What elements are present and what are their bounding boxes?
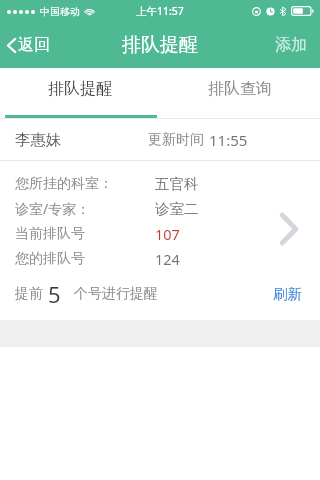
staticText: 您所挂的科室： [15,175,113,193]
staticText: 更新时间 [148,131,204,149]
staticText: 添加 [275,35,307,55]
staticText: 5 [48,279,61,309]
staticText: 当前排队号 [15,225,85,243]
staticText: 李惠妹 [15,130,62,150]
staticText: 五官科 [155,175,199,193]
staticText: 107 [155,224,180,244]
button[interactable]: 查看详情 [280,213,298,245]
staticText: 个号进行提醒 [74,285,158,303]
staticText: 返回 [18,35,50,55]
staticText: 中国移动 [40,5,80,18]
button[interactable]: 排队提醒 [0,68,160,118]
staticText: 上午11:57 [136,4,184,18]
staticText: 124 [155,249,180,269]
staticText: 排队提醒 [122,33,198,57]
staticText: 您的排队号 [15,250,85,268]
button[interactable]: 返回 [0,29,60,61]
button[interactable]: 刷新 [255,281,320,307]
staticText: 诊室/专家： [15,199,91,218]
staticText: 提前 [15,285,43,303]
button[interactable]: 添加 [263,27,320,63]
button[interactable]: 李惠妹 [0,119,320,320]
staticText: 刷新 [273,285,302,303]
staticText: 11:55 [209,130,248,150]
staticText: 排队查询 [208,79,272,99]
staticText: 排队提醒 [48,79,112,99]
button[interactable]: 排队查询 [160,68,320,118]
staticText: 诊室二 [155,200,199,218]
